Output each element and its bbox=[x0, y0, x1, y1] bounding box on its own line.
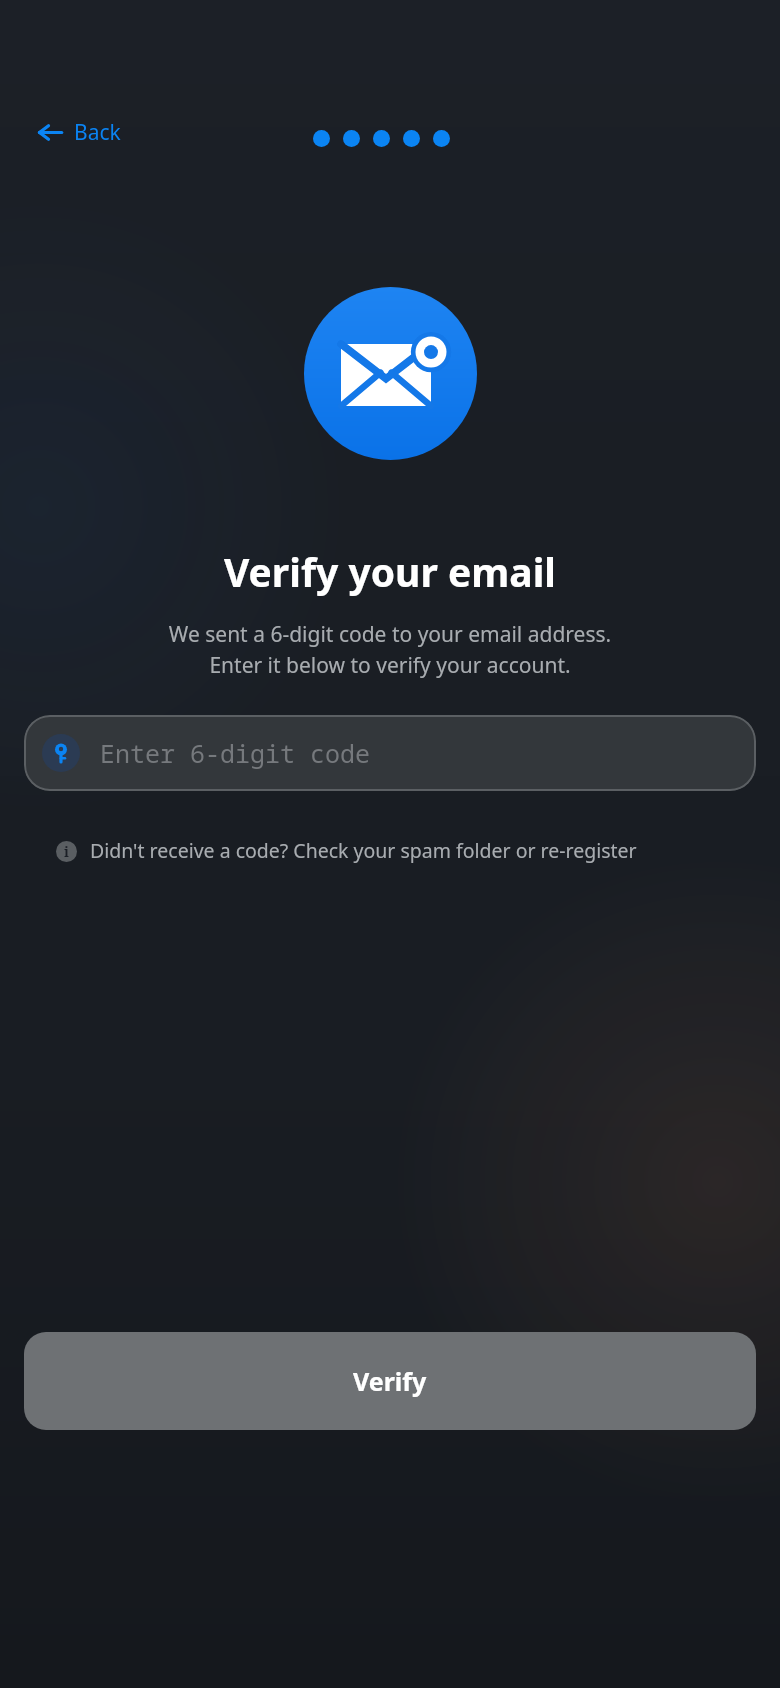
staticText: Verify your email bbox=[24, 545, 756, 598]
button[interactable]: Back bbox=[28, 112, 131, 153]
button[interactable]: Verify bbox=[24, 1332, 756, 1430]
staticText: Back bbox=[74, 118, 121, 147]
staticText: Enter 6-digit code bbox=[100, 736, 371, 770]
staticText: Verify bbox=[353, 1364, 427, 1398]
button[interactable]: Enter 6-digit code bbox=[24, 715, 756, 791]
staticText: Didn't receive a code? Check your spam f… bbox=[90, 837, 637, 864]
staticText: We sent a 6-digit code to your email add… bbox=[30, 620, 750, 679]
staticText: i bbox=[64, 842, 69, 861]
